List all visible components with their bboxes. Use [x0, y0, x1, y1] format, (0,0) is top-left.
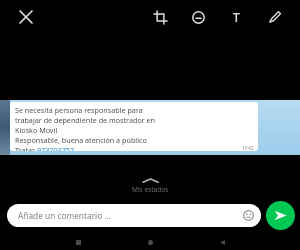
- staticText: Se necesita persona responsable para: [15, 105, 143, 115]
- staticText: Responsable, buena atención a público: [15, 135, 147, 145]
- staticText: 973703757: [37, 145, 75, 151]
- staticText: Añade un comentario ...: [18, 210, 112, 221]
- staticText: Tratar: [15, 145, 37, 151]
- button[interactable]: Crop and rotate: [147, 4, 173, 30]
- staticText: Mis estados: [132, 185, 169, 194]
- button[interactable]: Añade un comentario ...: [7, 204, 261, 227]
- button[interactable]: Mis estados: [0, 178, 300, 194]
- button[interactable]: Sticker: [185, 4, 211, 30]
- staticText: T: [233, 9, 240, 25]
- staticText: trabajar de dependiente de mostrador en: [15, 115, 156, 125]
- button[interactable]: Home: [139, 235, 161, 250]
- staticText: Kiosko Movil: [15, 125, 58, 135]
- button[interactable]: Recents: [67, 235, 89, 250]
- button[interactable]: Send: [266, 201, 295, 230]
- button[interactable]: Add text: [223, 4, 249, 30]
- button[interactable]: Draw: [261, 4, 287, 30]
- button[interactable]: Close: [13, 4, 39, 30]
- staticText: 17:42: [242, 145, 254, 151]
- button[interactable]: Back: [211, 235, 233, 250]
